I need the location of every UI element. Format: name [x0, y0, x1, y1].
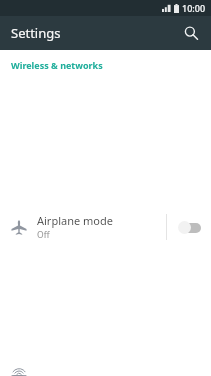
staticText: Settings: [11, 24, 61, 42]
button[interactable]: Airplane mode toggle: [157, 78, 211, 376]
staticText: 10:00: [182, 2, 206, 14]
staticText: Wireless & networks: [11, 59, 103, 71]
staticText: Airplane mode: [37, 213, 113, 228]
staticText: Off: [37, 229, 50, 241]
button[interactable]: Airplane mode: [0, 78, 211, 376]
button[interactable]: Search: [177, 19, 205, 47]
